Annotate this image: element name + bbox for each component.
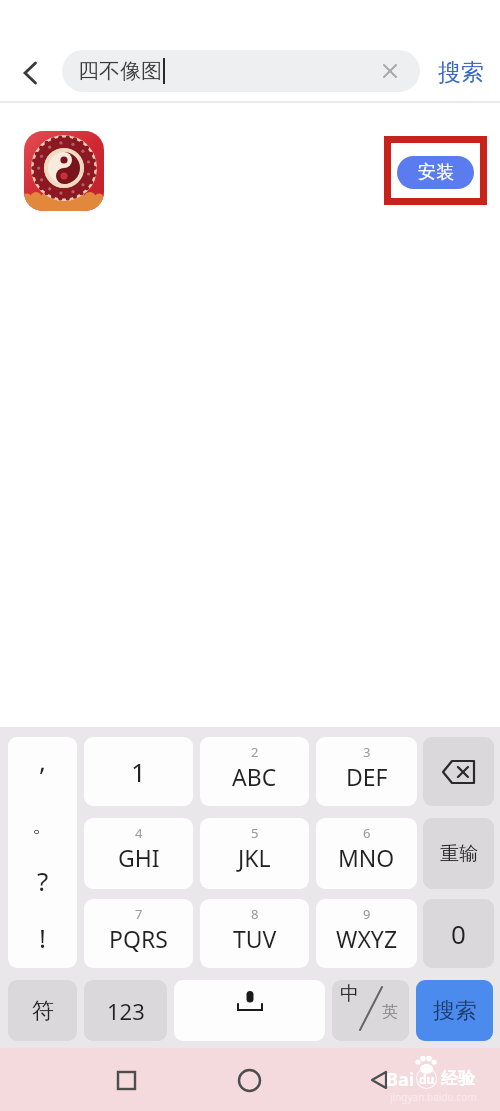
button[interactable]: 中 xyxy=(332,980,409,1041)
button[interactable] xyxy=(423,737,494,806)
button[interactable]: 搜索 xyxy=(416,980,493,1041)
button[interactable]: 9 xyxy=(316,899,417,968)
staticText: TUV xyxy=(233,923,277,954)
staticText: 5 xyxy=(251,824,259,842)
button[interactable]: 4 xyxy=(84,818,193,889)
staticText: 7 xyxy=(135,905,143,923)
button[interactable]: 0 xyxy=(423,899,494,968)
button[interactable]: 搜索 xyxy=(432,54,490,90)
button[interactable] xyxy=(361,1062,397,1098)
button[interactable]: 1 xyxy=(84,737,193,806)
button[interactable]: 123 xyxy=(84,980,167,1041)
button[interactable]: , xyxy=(8,737,77,968)
staticText: , xyxy=(39,743,46,778)
staticText: Bai xyxy=(386,1067,415,1092)
staticText: 经验 xyxy=(441,1068,475,1089)
staticText: ABC xyxy=(232,761,277,792)
staticText: ! xyxy=(39,920,46,955)
staticText: PQRS xyxy=(109,923,168,954)
button[interactable] xyxy=(231,1062,267,1098)
button[interactable]: 3 xyxy=(316,737,417,806)
staticText: JKL xyxy=(238,842,271,873)
staticText: DEF xyxy=(346,761,388,792)
button[interactable] xyxy=(24,131,104,211)
staticText: 2 xyxy=(251,743,259,761)
staticText: 4 xyxy=(135,824,143,842)
button[interactable]: 安装 xyxy=(397,156,474,189)
staticText: 搜索 xyxy=(433,997,477,1025)
button[interactable] xyxy=(108,1062,144,1098)
staticText: 安装 xyxy=(418,161,454,184)
button[interactable]: 重输 xyxy=(423,818,494,889)
staticText: 0 xyxy=(451,916,466,951)
button[interactable]: 符 xyxy=(8,980,77,1041)
button[interactable] xyxy=(174,980,325,1041)
staticText: WXYZ xyxy=(336,923,398,954)
staticText: 123 xyxy=(107,996,145,1026)
staticText: ? xyxy=(37,863,49,898)
staticText: 1 xyxy=(131,754,146,789)
staticText: 8 xyxy=(251,905,259,923)
staticText: 四不像图 xyxy=(78,58,162,84)
button[interactable]: 5 xyxy=(200,818,309,889)
button[interactable]: 7 xyxy=(84,899,193,968)
button[interactable]: 8 xyxy=(200,899,309,968)
staticText: 符 xyxy=(32,997,54,1025)
staticText: 英 xyxy=(382,1002,398,1022)
staticText: 9 xyxy=(363,905,371,923)
staticText: 6 xyxy=(363,824,371,842)
staticText: 重输 xyxy=(440,842,478,866)
staticText: 搜索 xyxy=(438,58,484,87)
staticText: du xyxy=(419,1071,435,1087)
staticText: 3 xyxy=(363,743,371,761)
staticText: 中 xyxy=(340,982,359,1006)
button[interactable] xyxy=(14,56,46,88)
staticText: MNO xyxy=(338,842,395,873)
staticText: 。 xyxy=(32,811,54,839)
button[interactable]: 四不像图 xyxy=(62,50,420,92)
button[interactable]: 2 xyxy=(200,737,309,806)
staticText: jingyan.baidu.com xyxy=(390,1090,477,1104)
staticText: GHI xyxy=(118,842,160,873)
button[interactable]: 6 xyxy=(316,818,417,889)
